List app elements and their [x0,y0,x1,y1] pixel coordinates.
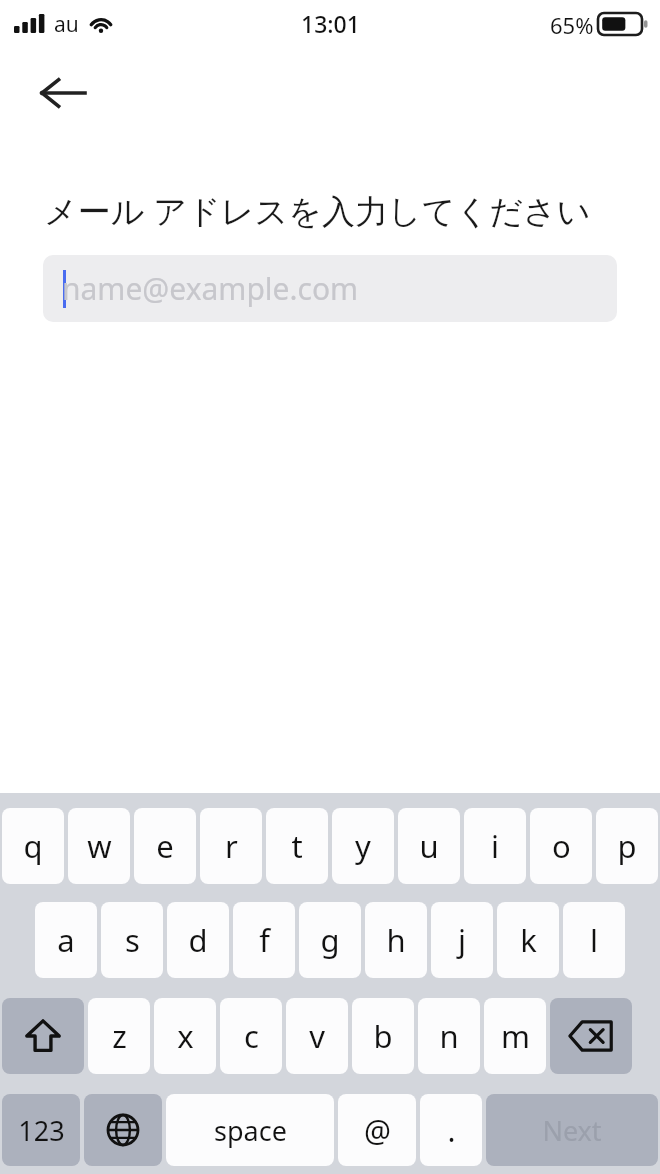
staticText: k [520,919,537,961]
button[interactable]: g [299,902,361,978]
staticText: m [501,1015,530,1057]
button[interactable]: Shift [2,998,84,1074]
staticText: d [188,919,208,961]
staticText: 123 [18,1112,65,1149]
staticText: s [125,919,140,961]
button[interactable]: b [352,998,414,1074]
button[interactable]: i [464,808,526,884]
staticText: space [214,1112,287,1149]
button[interactable]: u [398,808,460,884]
button[interactable]: name@example.com [43,255,617,322]
staticText: i [491,825,499,867]
button[interactable]: w [68,808,130,884]
button[interactable]: d [167,902,229,978]
button[interactable]: v [286,998,348,1074]
button[interactable]: e [134,808,196,884]
button[interactable]: h [365,902,427,978]
staticText: . [447,1110,456,1151]
button[interactable]: @ [338,1094,416,1166]
staticText: x [177,1015,194,1057]
button[interactable]: s [101,902,163,978]
button[interactable]: o [530,808,592,884]
staticText: Next [542,1112,602,1149]
staticText: h [386,919,406,961]
button[interactable]: k [497,902,559,978]
staticText: name@example.com [62,268,359,309]
staticText: au [54,10,79,39]
staticText: b [373,1015,393,1057]
button[interactable]: 123 [2,1094,80,1166]
staticText: j [458,919,466,961]
button[interactable]: m [484,998,546,1074]
staticText: o [552,825,571,867]
button[interactable]: l [563,902,625,978]
button[interactable]: p [596,808,658,884]
button[interactable]: y [332,808,394,884]
button[interactable]: x [154,998,216,1074]
staticText: a [57,919,75,961]
staticText: @ [364,1110,391,1151]
button[interactable]: Next [486,1094,658,1166]
button[interactable]: f [233,902,295,978]
button[interactable]: Switch keyboard [84,1094,162,1166]
staticText: v [309,1015,325,1057]
button[interactable]: n [418,998,480,1074]
button[interactable]: . [420,1094,482,1166]
staticText: メール アドレスを入力してください [44,188,591,233]
staticText: p [617,825,637,867]
button[interactable]: Back [30,60,96,126]
staticText: 65% [550,10,594,40]
staticText: r [225,825,238,867]
staticText: 13:01 [301,8,360,39]
staticText: q [23,825,43,867]
button[interactable]: a [35,902,97,978]
button[interactable]: Backspace [550,998,632,1074]
button[interactable]: space [166,1094,334,1166]
button[interactable]: j [431,902,493,978]
staticText: f [259,919,270,961]
staticText: z [112,1015,127,1057]
staticText: y [355,825,371,867]
staticText: n [439,1015,459,1057]
staticText: c [244,1015,259,1057]
button[interactable]: z [88,998,150,1074]
staticText: g [320,919,340,961]
button[interactable]: t [266,808,328,884]
button[interactable]: r [200,808,262,884]
staticText: w [87,825,112,867]
staticText: l [590,919,598,961]
staticText: u [419,825,439,867]
staticText: e [156,825,174,867]
button[interactable]: q [2,808,64,884]
button[interactable]: c [220,998,282,1074]
staticText: t [291,825,303,867]
